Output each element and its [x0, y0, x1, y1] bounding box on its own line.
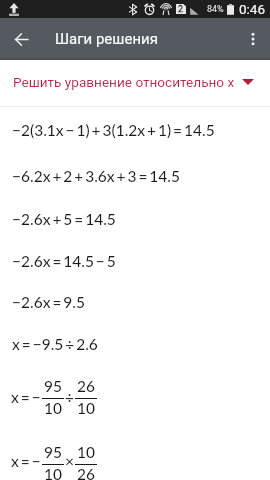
staticText: 2 — [178, 4, 184, 14]
staticText: 95 — [44, 443, 62, 462]
staticText: x = − — [11, 452, 41, 471]
staticText: 10 — [77, 443, 95, 462]
staticText: x = − — [11, 388, 41, 407]
staticText: −2.6x = 9.5 — [12, 293, 85, 312]
staticText: 26 — [77, 377, 95, 396]
staticText: ÷ — [65, 388, 74, 407]
staticText: Шаги решения — [55, 30, 158, 48]
staticText: −6.2x + 2 + 3.6x + 3 = 14.5 — [12, 167, 180, 186]
button[interactable]: Back — [0, 18, 42, 60]
staticText: Решить уравнение относительно x — [13, 74, 235, 90]
staticText: x = −9.5 ÷ 2.6 — [12, 335, 98, 354]
staticText: 0:46 — [239, 1, 266, 17]
staticText: −2.6x = 14.5 − 5 — [12, 252, 116, 271]
button[interactable]: Решить уравнение относительно x — [0, 60, 270, 106]
staticText: 26 — [77, 465, 95, 480]
staticText: × — [65, 452, 74, 471]
staticText: −2.6x + 5 = 14.5 — [12, 210, 116, 229]
staticText: 10 — [44, 465, 62, 480]
staticText: 10 — [44, 399, 62, 418]
staticText: 84% — [207, 4, 224, 15]
staticText: 95 — [44, 377, 62, 396]
staticText: 10 — [77, 399, 95, 418]
staticText: −2(3.1x − 1) + 3(1.2x + 1) = 14.5 — [12, 121, 215, 140]
button[interactable]: More options — [236, 18, 270, 60]
